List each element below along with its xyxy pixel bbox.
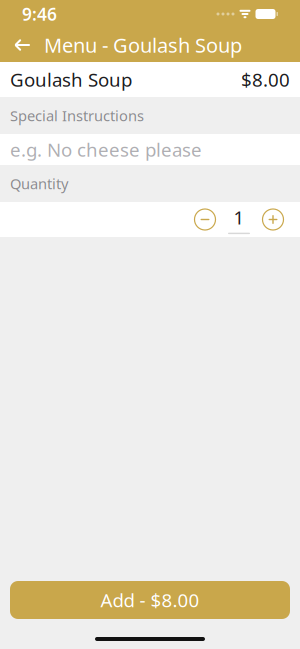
button[interactable]: Increase quantity [260, 206, 286, 232]
staticText: Special Instructions [10, 106, 144, 125]
staticText: 1 [233, 205, 244, 230]
staticText: $8.00 [241, 67, 290, 92]
button[interactable]: Decrease quantity [192, 206, 218, 232]
staticText: Quantity [10, 174, 68, 193]
staticText: Goulash Soup [10, 67, 132, 92]
staticText: 9:46 [22, 2, 57, 25]
button[interactable]: Add - $8.00 [10, 581, 290, 619]
staticText: Menu - Goulash Soup [44, 32, 242, 58]
button[interactable]: Back [0, 28, 44, 62]
staticText: e.g. No cheese please [10, 137, 202, 162]
staticText: Add - $8.00 [100, 588, 199, 612]
